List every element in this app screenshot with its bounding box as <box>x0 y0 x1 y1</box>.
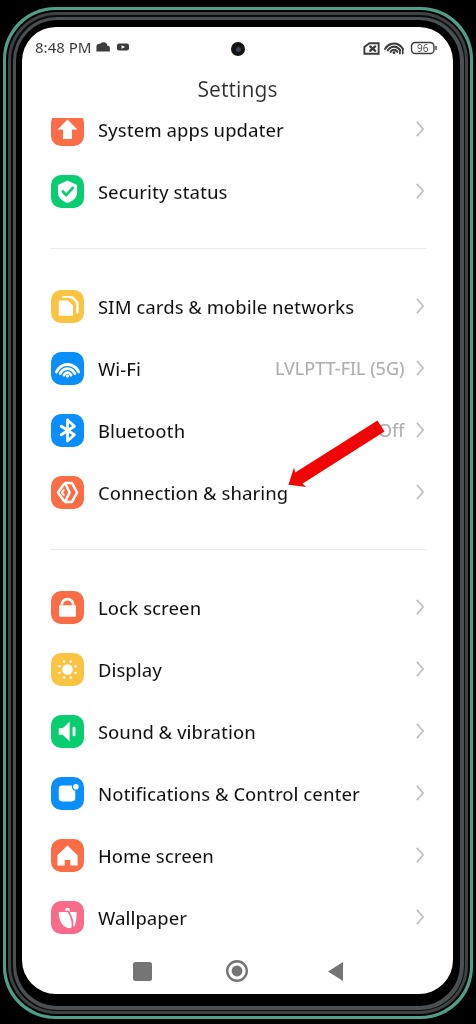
button[interactable]: Back <box>313 949 357 993</box>
button[interactable]: Wallpaper <box>22 886 453 948</box>
button[interactable]: Lock screen <box>22 576 453 638</box>
button[interactable]: Recent apps <box>120 949 164 993</box>
staticText: Bluetooth <box>98 418 186 443</box>
staticText: Notifications & Control center <box>98 781 360 806</box>
button[interactable]: Display <box>22 638 453 700</box>
button[interactable]: Bluetooth <box>22 399 453 461</box>
staticText: LVLPTT-FIL (5G) <box>275 356 405 381</box>
staticText: Security status <box>98 179 228 204</box>
button[interactable]: Notifications & Control center <box>22 762 453 824</box>
staticText: Home screen <box>98 843 214 868</box>
staticText: Settings <box>22 75 453 104</box>
staticText: Wallpaper <box>98 905 188 930</box>
button[interactable]: Wi-Fi <box>22 337 453 399</box>
staticText: Lock screen <box>98 595 202 620</box>
staticText: Connection & sharing <box>98 480 289 505</box>
staticText: SIM cards & mobile networks <box>98 294 355 319</box>
staticText: 8:48 PM <box>35 37 92 57</box>
button[interactable]: Connection & sharing <box>22 461 453 523</box>
button[interactable]: Home <box>215 949 259 993</box>
staticText: System apps updater <box>98 118 284 142</box>
button[interactable]: SIM cards & mobile networks <box>22 275 453 337</box>
button[interactable]: Sound & vibration <box>22 700 453 762</box>
staticText: Wi-Fi <box>98 356 141 381</box>
staticText: Sound & vibration <box>98 719 256 744</box>
button[interactable]: Security status <box>22 160 453 222</box>
staticText: Display <box>98 657 162 682</box>
staticText: Off <box>378 418 405 443</box>
button[interactable]: System apps updater <box>22 118 453 160</box>
staticText: 96 <box>417 41 429 55</box>
button[interactable]: Home screen <box>22 824 453 886</box>
